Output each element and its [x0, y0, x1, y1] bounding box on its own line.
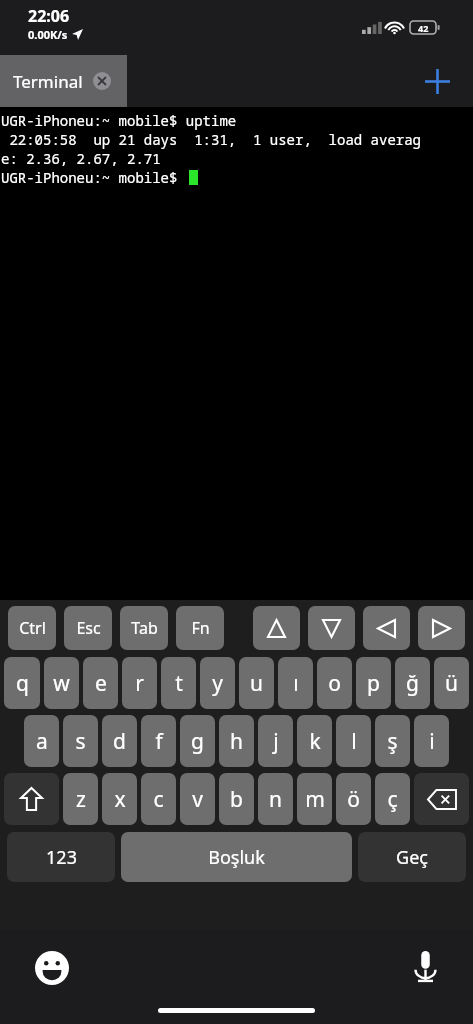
button[interactable]: t [161, 657, 196, 709]
button[interactable]: w [44, 657, 79, 709]
button[interactable]: Microphone [401, 944, 449, 992]
button[interactable]: e [83, 657, 118, 709]
button[interactable]: r [122, 657, 157, 709]
button[interactable]: a [24, 715, 59, 767]
button[interactable]: v [180, 773, 215, 825]
button[interactable]: j [258, 715, 293, 767]
staticText: Geç [396, 845, 428, 870]
staticText: a [36, 727, 48, 756]
button[interactable]: ç [375, 773, 410, 825]
staticText: UGR-iPhoneu:~ mobile$ [1, 168, 186, 187]
staticText: ö [347, 785, 360, 814]
staticText: s [75, 727, 86, 756]
button[interactable]: New tab [415, 59, 459, 103]
staticText: ü [445, 669, 458, 698]
staticText: ç [387, 785, 398, 814]
staticText: u [250, 669, 263, 698]
staticText: 123 [46, 845, 77, 870]
staticText: g [191, 727, 204, 756]
button[interactable]: Shift [4, 773, 59, 825]
staticText: x [114, 785, 126, 814]
staticText: p [367, 669, 380, 698]
staticText: 42 [418, 22, 429, 34]
staticText: l [351, 727, 357, 756]
button[interactable]: ı [278, 657, 313, 709]
button[interactable]: Arrow right [418, 606, 465, 650]
button[interactable]: f [141, 715, 176, 767]
staticText: Esc [76, 617, 101, 639]
staticText: j [273, 727, 279, 756]
staticText: w [53, 669, 70, 698]
button[interactable]: Fn [176, 606, 224, 650]
button[interactable]: q [4, 657, 40, 709]
button[interactable]: ğ [395, 657, 430, 709]
staticText: m [305, 785, 325, 814]
button[interactable]: Arrow up [253, 606, 300, 650]
button[interactable]: n [258, 773, 293, 825]
staticText: f [155, 727, 163, 756]
button[interactable]: k [297, 715, 332, 767]
button[interactable]: Tab [120, 606, 168, 650]
staticText: 22:06 [28, 5, 70, 27]
staticText: ş [387, 727, 398, 756]
button[interactable]: i [414, 715, 449, 767]
staticText: Ctrl [19, 617, 46, 639]
staticText: z [76, 785, 86, 814]
staticText: i [429, 727, 435, 756]
staticText: q [16, 669, 29, 698]
button[interactable]: p [356, 657, 391, 709]
staticText: Boşluk [208, 845, 265, 870]
staticText: e [95, 669, 107, 698]
button[interactable]: Close tab [93, 72, 111, 90]
staticText: t [175, 669, 183, 698]
button[interactable]: Esc [64, 606, 112, 650]
staticText: k [309, 727, 321, 756]
staticText: d [113, 727, 126, 756]
button[interactable]: 123 [7, 832, 115, 882]
button[interactable]: Geç [358, 832, 466, 882]
button[interactable]: s [63, 715, 98, 767]
staticText: UGR-iPhoneu:~ mobile$ uptime [1, 111, 237, 130]
button[interactable]: ü [434, 657, 469, 709]
button[interactable]: UGR-iPhoneu:~ mobile$ uptime [0, 107, 473, 600]
button[interactable]: Backspace [414, 773, 469, 825]
button[interactable]: z [63, 773, 98, 825]
staticText: v [192, 785, 203, 814]
button[interactable]: d [102, 715, 137, 767]
button[interactable]: b [219, 773, 254, 825]
button[interactable]: l [336, 715, 371, 767]
staticText: ğ [406, 669, 419, 698]
staticText: y [212, 669, 223, 698]
button[interactable]: Emoji [28, 944, 76, 992]
button[interactable]: m [297, 773, 332, 825]
button[interactable]: h [219, 715, 254, 767]
button[interactable]: Arrow down [308, 606, 355, 650]
button[interactable]: ş [375, 715, 410, 767]
staticText: o [328, 669, 341, 698]
button[interactable]: Boşluk [121, 832, 352, 882]
staticText: Tab [131, 617, 158, 639]
staticText: 22:05:58 up 21 days 1:31, 1 user, load a… [1, 130, 421, 149]
button[interactable]: Terminal [0, 55, 127, 107]
button[interactable]: y [200, 657, 235, 709]
staticText: n [269, 785, 282, 814]
button[interactable]: g [180, 715, 215, 767]
button[interactable]: ö [336, 773, 371, 825]
staticText: b [230, 785, 243, 814]
button[interactable]: c [141, 773, 176, 825]
staticText: ı [293, 669, 299, 698]
staticText: c [153, 785, 164, 814]
staticText: r [135, 669, 144, 698]
button[interactable]: Arrow left [363, 606, 410, 650]
button[interactable]: Ctrl [8, 606, 56, 650]
staticText: e: 2.36, 2.67, 2.71 [1, 149, 161, 168]
staticText: h [230, 727, 243, 756]
button[interactable]: o [317, 657, 352, 709]
staticText: Fn [191, 617, 210, 639]
staticText: Terminal [13, 70, 83, 93]
button[interactable]: x [102, 773, 137, 825]
button[interactable]: u [239, 657, 274, 709]
staticText: 0.00K/s [28, 27, 68, 42]
